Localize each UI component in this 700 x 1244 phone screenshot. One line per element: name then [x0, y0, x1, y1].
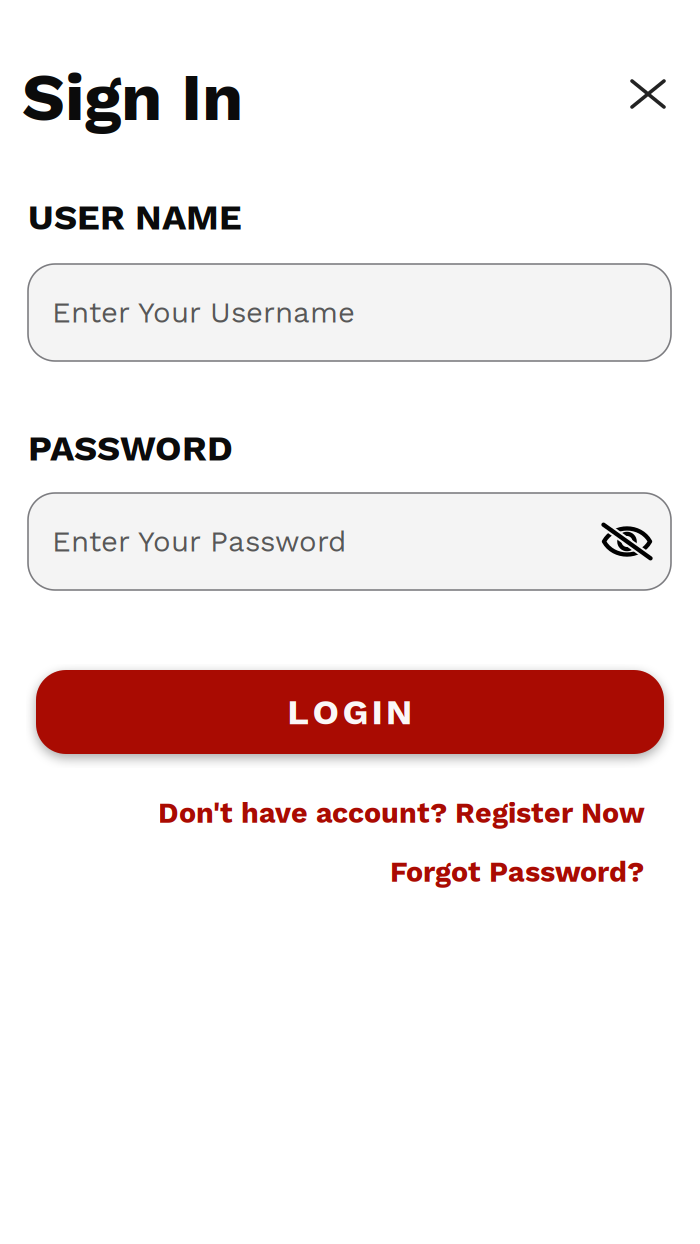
staticText: Enter Your Password — [52, 524, 346, 559]
staticText: G — [342, 691, 368, 733]
staticText: L — [287, 691, 309, 733]
button[interactable]: Show password — [601, 519, 653, 563]
staticText: O — [312, 691, 339, 733]
staticText: I — [372, 691, 383, 733]
button[interactable]: L — [36, 670, 664, 754]
staticText: Sign In — [22, 58, 243, 136]
staticText: Enter Your Username — [52, 295, 355, 330]
button[interactable]: Don't have account? Register Now — [158, 796, 645, 830]
staticText: Forgot Password? — [390, 855, 644, 889]
button[interactable]: Forgot Password? — [390, 855, 644, 889]
staticText: N — [386, 691, 413, 733]
staticText: USER NAME — [28, 196, 242, 238]
staticText: PASSWORD — [28, 427, 233, 469]
staticText: Don't have account? Register Now — [158, 796, 645, 830]
button[interactable]: Close — [617, 63, 679, 125]
